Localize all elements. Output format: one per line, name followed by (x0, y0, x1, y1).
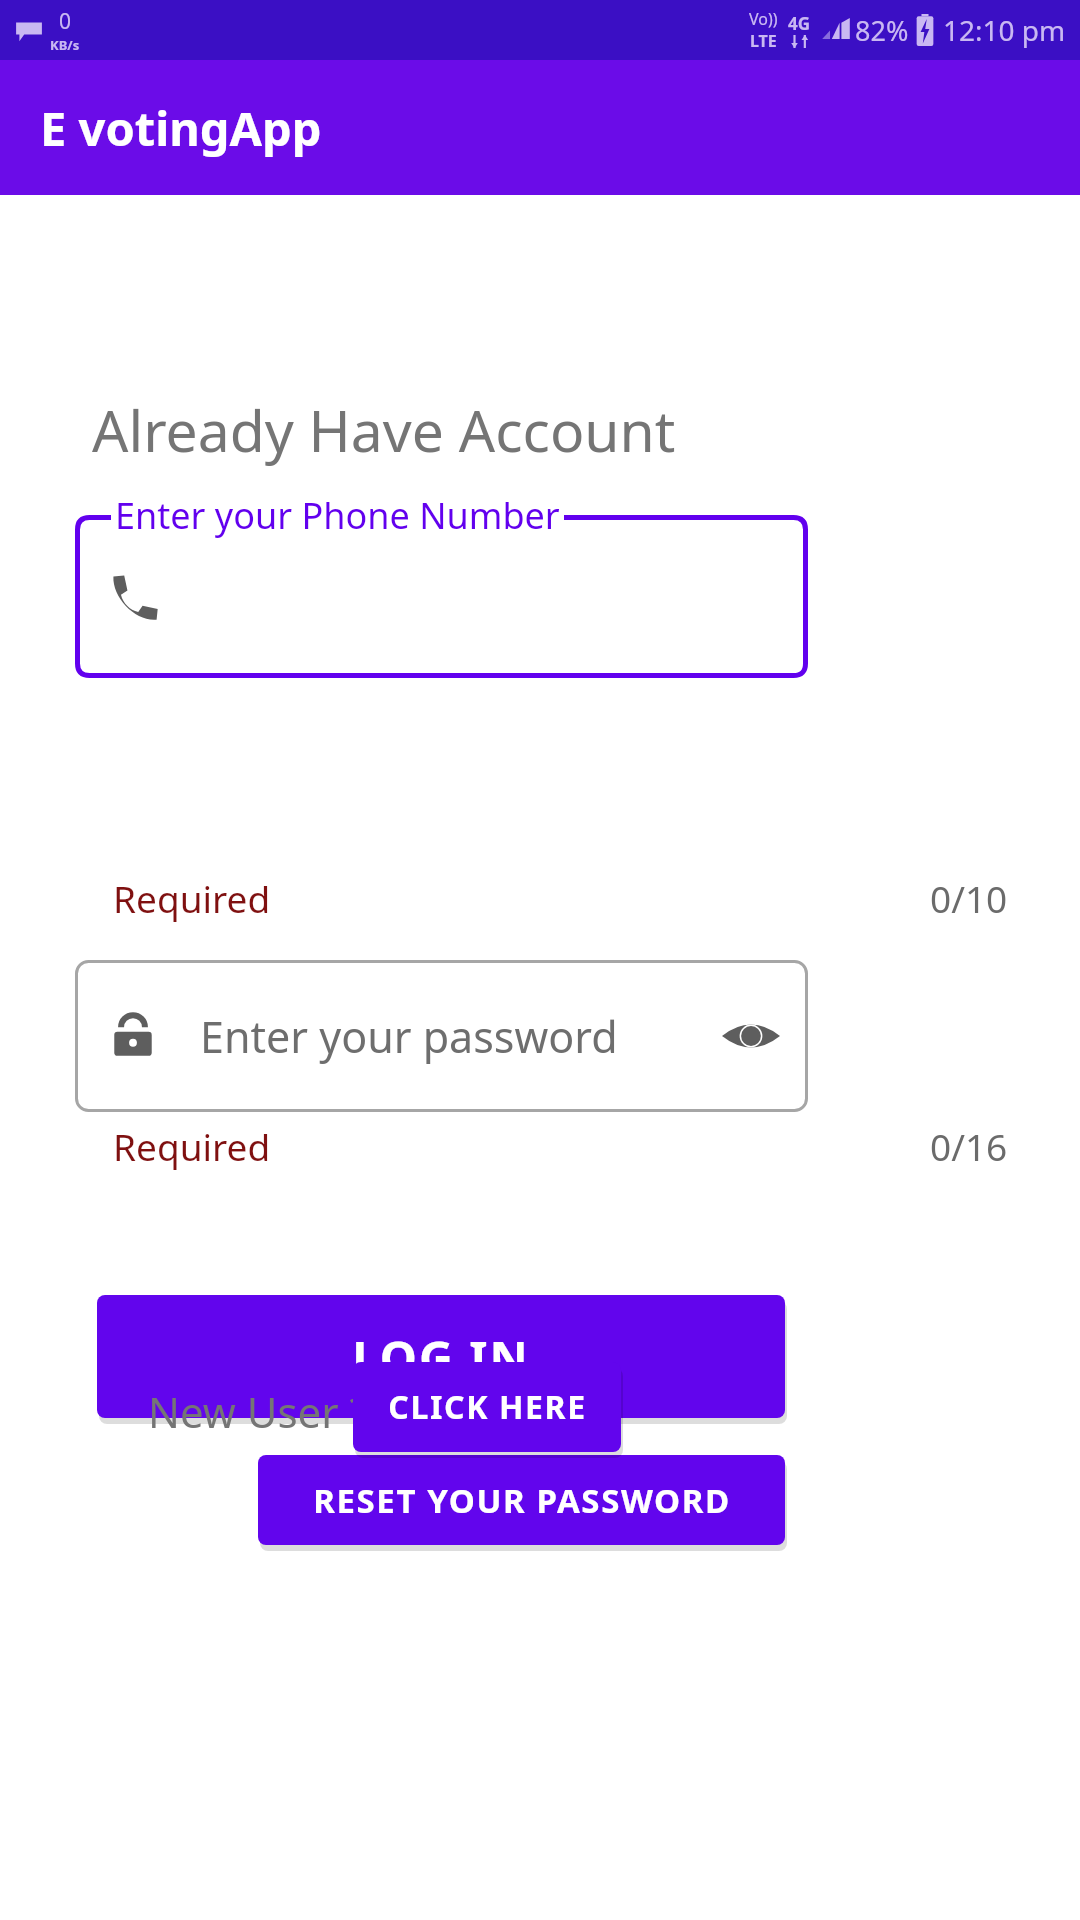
staticText: E votingApp (40, 96, 322, 160)
button[interactable]: RESET YOUR PASSWORD (258, 1455, 785, 1545)
staticText: Required (113, 1121, 271, 1171)
button[interactable]: LOG IN (97, 1295, 785, 1418)
staticText: Vo)) (749, 8, 778, 30)
staticText: 12:10 pm (943, 11, 1066, 49)
staticText: 0 (59, 7, 72, 36)
staticText: 0/16 (930, 1121, 1008, 1171)
button[interactable]: Enter your password (75, 960, 808, 1112)
staticText: LOG IN (352, 1325, 530, 1389)
button[interactable]: Show password (716, 1001, 786, 1071)
staticText: 82% (855, 12, 909, 49)
button[interactable]: CLICK HERE (353, 1362, 621, 1452)
staticText: Required (113, 873, 271, 923)
staticText: Already Have Account (92, 391, 676, 469)
staticText: Enter your Phone Number (115, 491, 560, 540)
staticText: CLICK HERE (388, 1385, 587, 1429)
button[interactable] (75, 515, 808, 678)
staticText: 0/10 (930, 873, 1008, 923)
staticText: LTE (750, 30, 777, 52)
staticText: KB/s (50, 36, 80, 54)
staticText: RESET YOUR PASSWORD (313, 1478, 731, 1523)
staticText: 4G (788, 12, 811, 35)
staticText: Enter your password (200, 1007, 618, 1066)
staticText: New User ? (148, 1383, 368, 1440)
